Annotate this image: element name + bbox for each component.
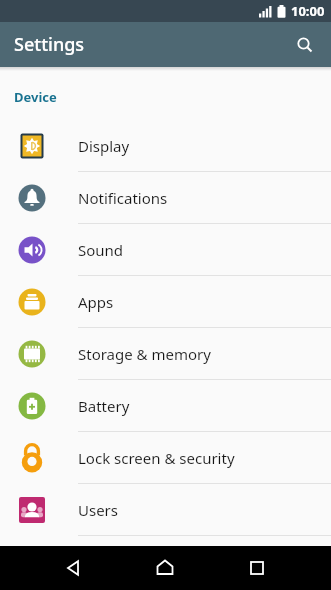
button[interactable] xyxy=(289,29,321,61)
button[interactable] xyxy=(28,546,119,590)
button[interactable]: Lock screen & security xyxy=(0,432,331,483)
button[interactable] xyxy=(211,546,303,590)
staticText: Storage & memory xyxy=(78,344,211,364)
button[interactable]: Sound xyxy=(0,224,331,275)
staticText: Battery xyxy=(78,396,130,416)
button[interactable]: Notifications xyxy=(0,172,331,223)
staticText: Users xyxy=(78,500,118,520)
staticText: Device xyxy=(14,88,57,106)
staticText: Lock screen & security xyxy=(78,448,235,468)
button[interactable]: Display xyxy=(0,120,331,171)
staticText: Apps xyxy=(78,292,114,312)
staticText: Display xyxy=(78,136,130,156)
button[interactable] xyxy=(119,546,211,590)
staticText: Settings xyxy=(14,32,85,57)
staticText: Notifications xyxy=(78,188,168,208)
button[interactable]: Battery xyxy=(0,380,331,431)
staticText: 10:00 xyxy=(291,2,325,20)
button[interactable]: Storage & memory xyxy=(0,328,331,379)
button[interactable]: Apps xyxy=(0,276,331,327)
button[interactable]: Users xyxy=(0,484,331,535)
staticText: Sound xyxy=(78,240,124,260)
